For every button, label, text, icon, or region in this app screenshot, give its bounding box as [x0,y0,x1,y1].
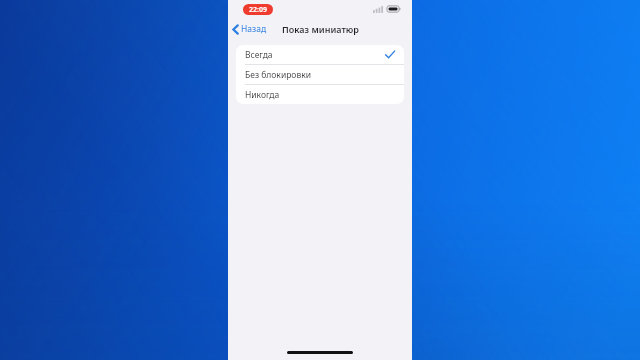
button[interactable]: Назад [228,20,273,38]
staticText: Показ миниатюр [282,23,359,35]
other: Selected [385,50,395,59]
button[interactable]: Всегда [236,45,404,64]
staticText: Без блокировки [245,69,311,81]
staticText: Назад [241,23,267,35]
button[interactable]: Никогда [236,85,404,104]
staticText: 22:09 [249,5,267,15]
button[interactable]: Без блокировки [236,65,404,84]
staticText: Всегда [245,49,273,61]
staticText: Никогда [245,89,280,101]
